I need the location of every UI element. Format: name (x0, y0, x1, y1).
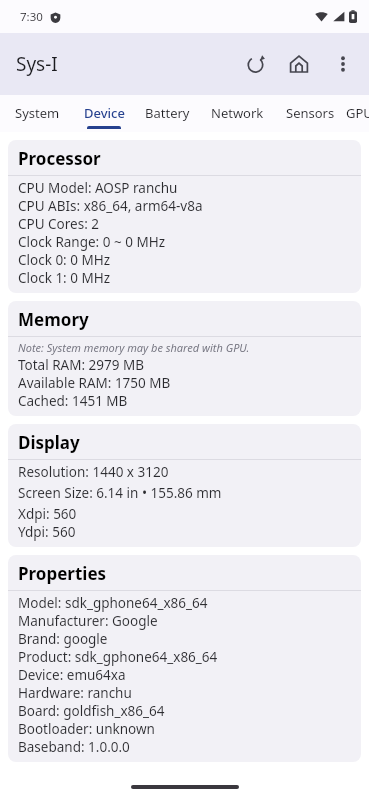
staticText: Battery (145, 104, 190, 122)
staticText: Product: sdk_gphone64_x86_64 (18, 648, 218, 666)
staticText: Total RAM: 2979 MB (18, 356, 144, 374)
staticText: Clock Range: 0 ~ 0 MHz (18, 233, 166, 251)
staticText: Available RAM: 1750 MB (18, 374, 171, 392)
staticText: Brand: google (18, 630, 108, 648)
button[interactable]: Sensors (274, 95, 346, 132)
staticText: Clock 1: 0 MHz (18, 269, 111, 287)
button[interactable]: Display (8, 424, 361, 547)
staticText: Manufacturer: Google (18, 612, 158, 630)
staticText: Model: sdk_gphone64_x86_64 (18, 594, 208, 612)
button[interactable]: More options (321, 42, 365, 86)
button[interactable]: Device (74, 95, 134, 132)
staticText: CPU Model: AOSP ranchu (18, 179, 178, 197)
button[interactable]: Battery (134, 95, 200, 132)
staticText: Display (18, 431, 80, 454)
staticText: Clock 0: 0 MHz (18, 251, 111, 269)
staticText: Sensors (286, 104, 335, 122)
staticText: Ydpi: 560 (18, 523, 76, 541)
staticText: Device: emu64xa (18, 666, 126, 684)
staticText: Hardware: ranchu (18, 684, 132, 702)
staticText: Xdpi: 560 (18, 505, 77, 523)
staticText: Note: System memory may be shared with G… (18, 340, 250, 355)
staticText: System (15, 104, 60, 122)
button[interactable]: Refresh (233, 42, 277, 86)
staticText: Network (211, 104, 264, 122)
staticText: Baseband: 1.0.0.0 (18, 738, 130, 756)
staticText: Screen Size: 6.14 in • 155.86 mm (18, 484, 222, 502)
staticText: Bootloader: unknown (18, 720, 155, 738)
staticText: Device (84, 104, 125, 122)
staticText: CPU Cores: 2 (18, 215, 100, 233)
staticText: GPU (346, 104, 369, 122)
staticText: Sys-I (16, 51, 58, 77)
button[interactable]: Processor (8, 140, 361, 293)
staticText: Resolution: 1440 x 3120 (18, 463, 169, 481)
staticText: CPU ABIs: x86_64, arm64-v8a (18, 197, 203, 215)
button[interactable]: System (0, 95, 74, 132)
button[interactable]: Properties (8, 555, 361, 762)
button[interactable]: Network (200, 95, 274, 132)
button[interactable]: Home (277, 42, 321, 86)
staticText: Memory (18, 308, 89, 331)
staticText: Board: goldfish_x86_64 (18, 702, 165, 720)
button[interactable]: GPU (346, 95, 369, 132)
button[interactable]: Memory (8, 301, 361, 416)
staticText: 7:30 (20, 9, 43, 25)
staticText: Processor (18, 147, 101, 170)
staticText: Cached: 1451 MB (18, 392, 128, 410)
staticText: Properties (18, 562, 107, 585)
